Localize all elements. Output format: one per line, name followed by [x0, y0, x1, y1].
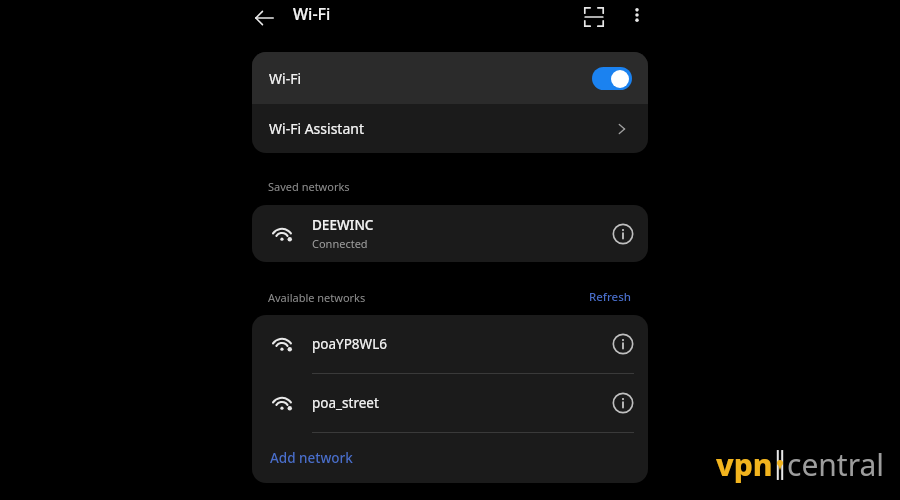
staticText: vpn	[716, 444, 773, 485]
button[interactable]: Add network	[252, 433, 648, 483]
staticText: Available networks	[268, 290, 366, 305]
button[interactable]: Wi-Fi on	[592, 67, 632, 90]
button[interactable]: More options	[622, 0, 652, 30]
button[interactable]: Wi-Fi	[252, 52, 648, 104]
button[interactable]: poaYP8WL6	[252, 315, 648, 373]
button[interactable]: poa_street	[252, 374, 648, 432]
staticText: DEEWINC	[312, 216, 374, 234]
button[interactable]: Refresh	[589, 289, 632, 305]
button[interactable]: Back	[246, 0, 282, 36]
button[interactable]: Network details for poa_street	[612, 392, 634, 414]
staticText: Saved networks	[268, 179, 350, 194]
button[interactable]: DEEWINC	[252, 205, 648, 262]
staticText: Refresh	[589, 289, 632, 305]
staticText: Add network	[270, 449, 353, 467]
button[interactable]: Network details for DEEWINC	[612, 223, 634, 245]
staticText: Wi-Fi Assistant	[269, 119, 364, 138]
staticText: poa_street	[312, 394, 379, 412]
staticText: central	[787, 444, 885, 485]
staticText: Wi-Fi	[269, 69, 302, 88]
staticText: Wi-Fi	[293, 3, 331, 25]
staticText: Connected	[312, 236, 368, 251]
button[interactable]: Wi-Fi Assistant	[252, 104, 648, 153]
button[interactable]: Scan QR code	[577, 0, 611, 34]
staticText: poaYP8WL6	[312, 335, 387, 353]
button[interactable]: Network details for poaYP8WL6	[612, 333, 634, 355]
